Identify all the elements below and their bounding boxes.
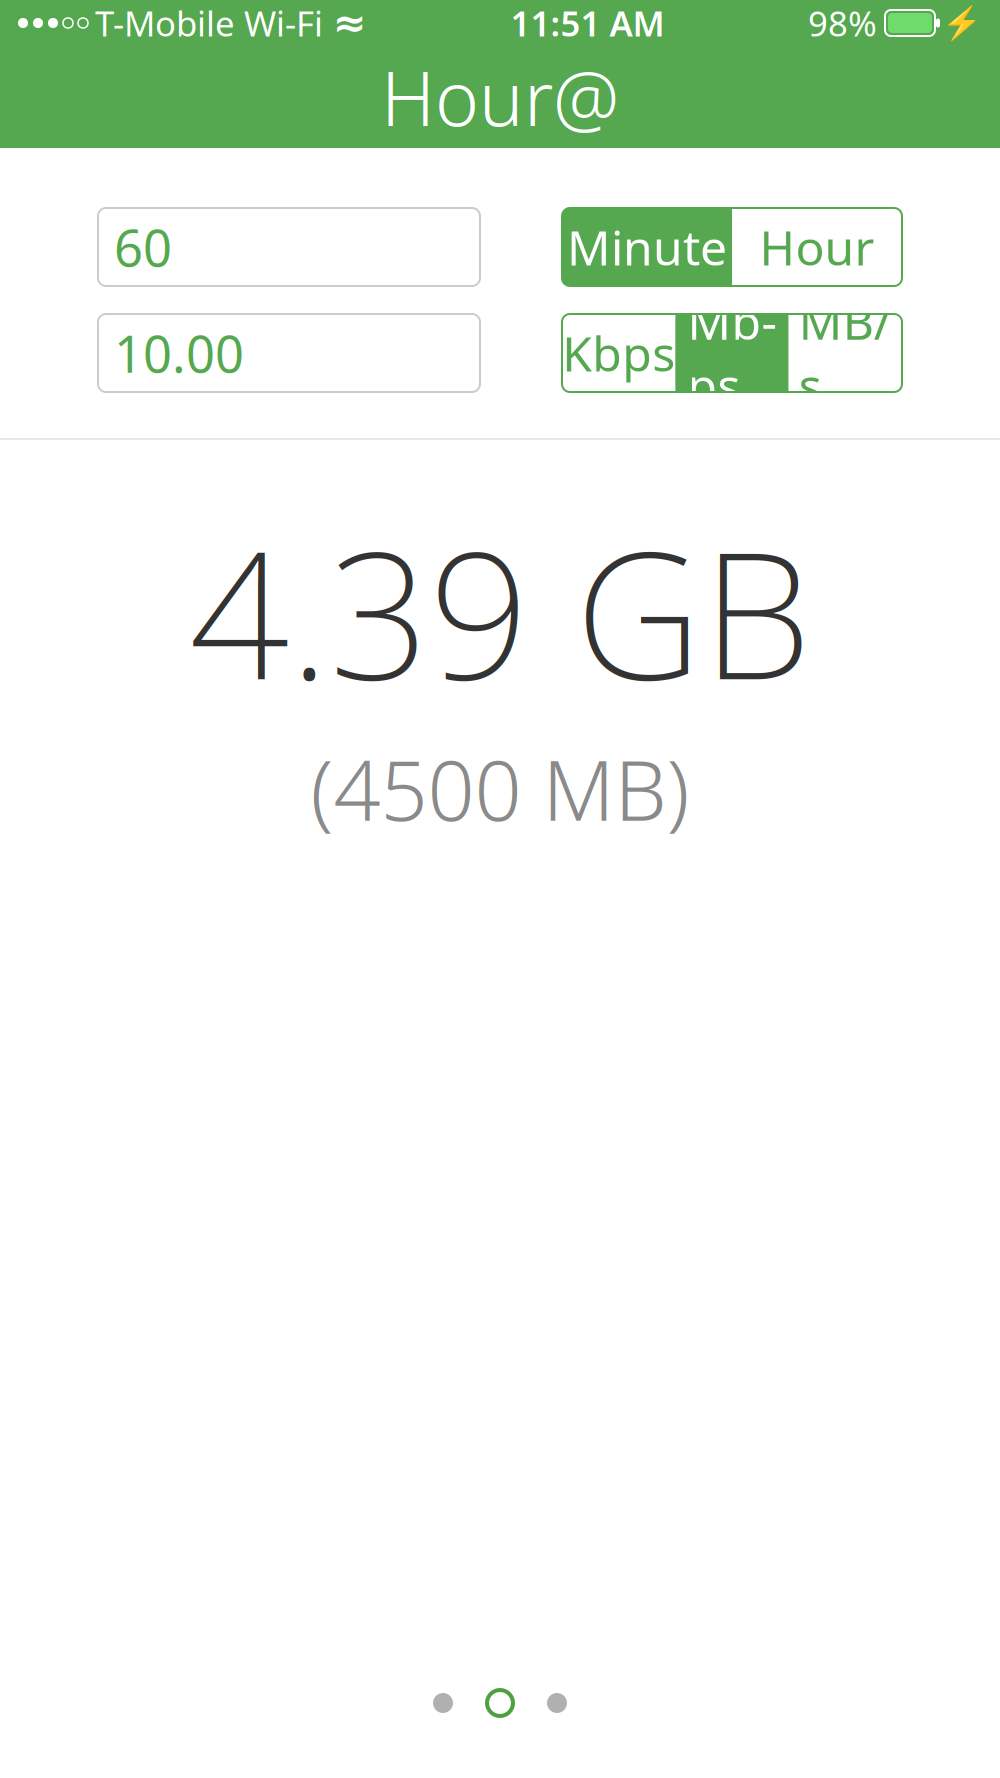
staticText: Hour [759,215,874,279]
button[interactable]: Minute [562,208,732,286]
staticText: T-Mobile Wi-Fi [95,0,323,46]
staticText: ≈ [333,0,367,46]
staticText: 60 [114,213,172,281]
button[interactable]: Hour [732,208,902,286]
button[interactable]: 60 [98,208,480,286]
staticText: MB/s [799,289,892,417]
button[interactable]: Page 3 [547,1693,567,1713]
button[interactable]: MB/s [789,314,902,392]
button[interactable]: Page 2, current page [487,1690,513,1716]
staticText: 4.39 GB [189,494,811,728]
staticText: Hour@ [381,47,619,147]
button[interactable]: Page 1 [433,1693,453,1713]
button[interactable]: 10.00 [98,314,480,392]
staticText: Minute [567,215,727,279]
button[interactable]: Mbps [675,314,789,392]
staticText: 10.00 [114,319,244,387]
staticText: Kbps [562,321,675,385]
staticText: 98% [808,0,877,46]
staticText: Mbps [687,289,776,417]
staticText: (4500 MB) [310,734,689,843]
staticText: 11:51 AM [510,0,664,46]
button[interactable]: Kbps [562,314,675,392]
staticText: ⚡ [942,5,982,41]
